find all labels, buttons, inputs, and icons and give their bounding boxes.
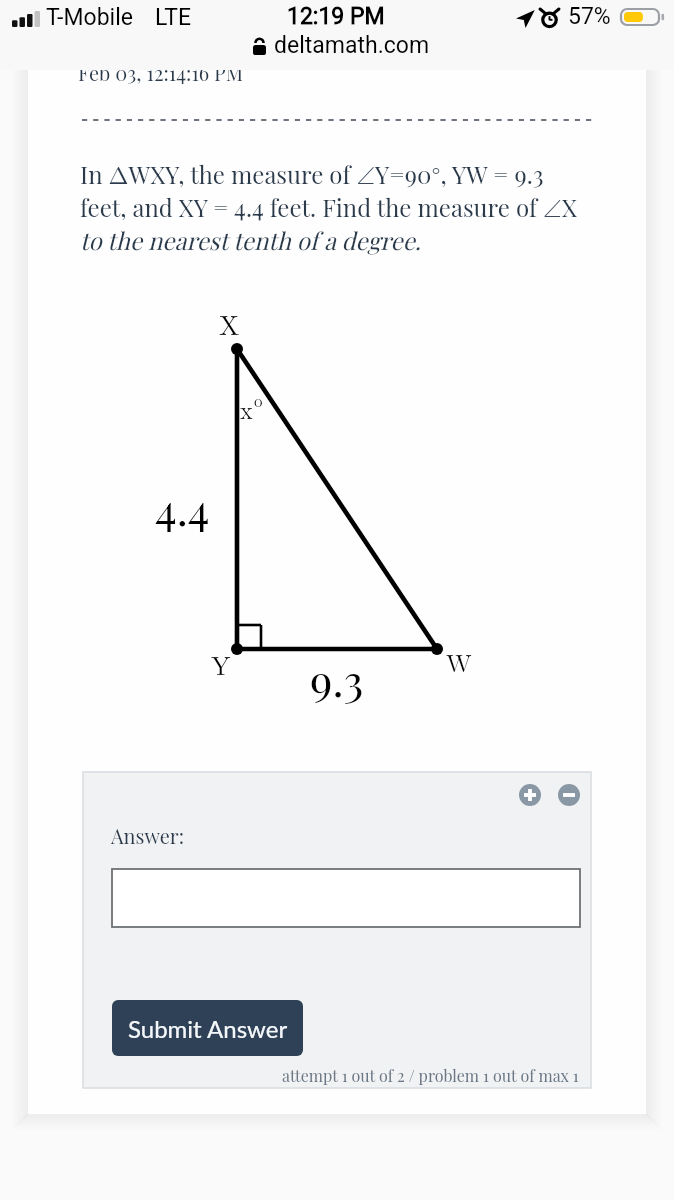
staticText: Y [211, 646, 231, 683]
staticText: LTE [155, 4, 192, 31]
staticText: 12:19 PM [287, 3, 385, 30]
staticText: feet, and XY = 4.4 feet. Find the measur… [80, 191, 577, 223]
button[interactable]: Zoom out [558, 784, 580, 806]
staticText: 4.4 [155, 478, 210, 537]
button[interactable] [112, 869, 580, 927]
staticText: Submit Answer [128, 1014, 288, 1043]
staticText: o [254, 388, 263, 412]
button[interactable]: Zoom in [519, 784, 541, 806]
staticText: to the nearest tenth of a degree. [80, 224, 421, 256]
other: Location in use [516, 10, 535, 28]
staticText: Feb 03, 12:14:16 PM [78, 59, 244, 86]
other: Alarm set [540, 9, 559, 27]
staticText: deltamath.com [274, 32, 430, 59]
staticText: x [240, 392, 253, 426]
staticText: W [446, 644, 472, 679]
staticText: Answer: [111, 822, 185, 849]
staticText: T-Mobile [46, 4, 133, 31]
staticText: attempt 1 out of 2 / problem 1 out of ma… [282, 1065, 579, 1086]
staticText: In ΔWXY, the measure of ∠Y=90°, YW = 9.3 [80, 158, 544, 190]
button[interactable]: Submit Answer [112, 1000, 303, 1056]
staticText: 57% [568, 3, 611, 30]
staticText: 9.3 [310, 649, 364, 708]
staticText: X [219, 305, 240, 343]
other: Battery 57 percent, low power mode [620, 8, 666, 27]
